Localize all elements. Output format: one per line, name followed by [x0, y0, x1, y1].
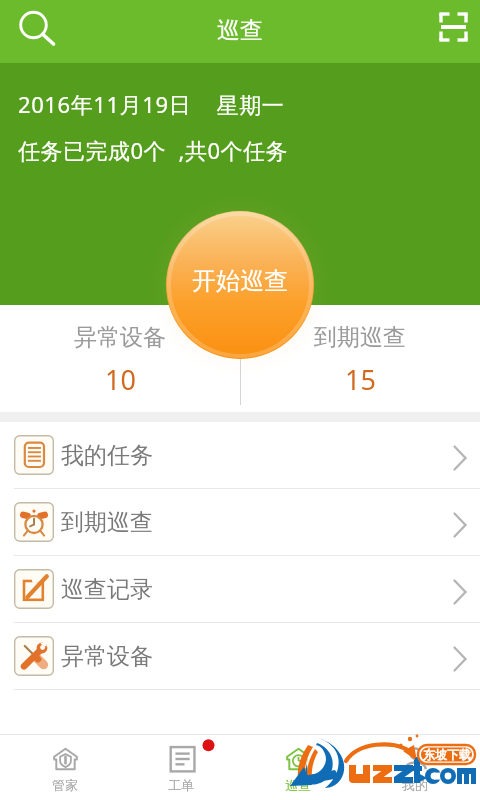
staticText: 巡查 — [285, 777, 311, 793]
staticText: 工单 — [168, 777, 194, 793]
button[interactable]: Search — [6, 3, 62, 59]
button[interactable]: 到期巡查 — [240, 305, 480, 398]
button[interactable]: 异常设备 — [0, 305, 240, 398]
staticText: 异常设备 — [61, 642, 153, 671]
button[interactable]: 工单 — [133, 735, 229, 799]
staticText: 15 — [345, 361, 376, 398]
button[interactable]: 我的 — [367, 735, 463, 799]
staticText: 东坡下载 — [423, 747, 471, 762]
staticText: 2016年11月19日 星期一 — [18, 89, 285, 119]
button[interactable]: Scan QR code — [428, 4, 474, 50]
staticText: 任务已完成0个 ,共0个任务 — [18, 135, 289, 165]
staticText: 开始巡查 — [192, 266, 288, 296]
staticText: 到期巡查 — [314, 323, 406, 352]
staticText: 到期巡查 — [61, 508, 153, 537]
staticText: 巡查记录 — [61, 575, 153, 604]
button[interactable]: 我的任务 — [0, 422, 480, 488]
button[interactable]: 巡查 — [250, 735, 346, 799]
button[interactable]: 开始巡查 — [166, 211, 314, 359]
staticText: 10 — [105, 361, 136, 398]
staticText: 巡查 — [217, 16, 263, 45]
staticText: 我的 — [402, 777, 428, 793]
staticText: 异常设备 — [74, 323, 166, 352]
staticText: 我的任务 — [61, 441, 153, 470]
button[interactable]: 异常设备 — [0, 623, 480, 689]
staticText: 管家 — [52, 777, 78, 793]
button[interactable]: 到期巡查 — [0, 489, 480, 555]
button[interactable]: 巡查记录 — [0, 556, 480, 622]
button[interactable]: 管家 — [17, 735, 113, 799]
